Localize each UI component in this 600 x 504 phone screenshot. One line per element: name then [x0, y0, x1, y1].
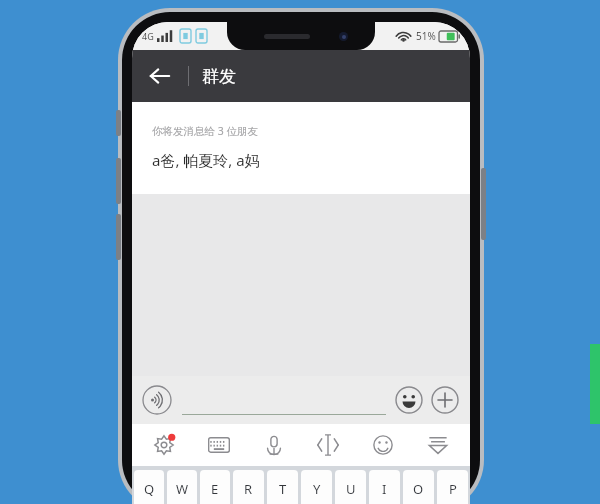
- staticText: 51%: [416, 29, 436, 43]
- staticText: Q: [144, 480, 155, 498]
- staticText: 4G: [142, 30, 154, 42]
- staticText: a爸, 帕夏玲, a妈: [152, 150, 260, 170]
- button[interactable]: Stickers: [360, 424, 406, 466]
- button[interactable]: Voice input: [142, 385, 172, 415]
- button[interactable]: E: [200, 470, 230, 504]
- button[interactable]: P: [437, 470, 468, 504]
- button[interactable]: U: [335, 470, 366, 504]
- button[interactable]: O: [403, 470, 434, 504]
- button[interactable]: [182, 385, 386, 415]
- button[interactable]: Back: [140, 56, 180, 96]
- button[interactable]: Hide keyboard: [415, 424, 461, 466]
- button[interactable]: Voice: [251, 424, 297, 466]
- staticText: 群发: [202, 66, 236, 87]
- button[interactable]: W: [167, 470, 197, 504]
- staticText: 你将发消息给 3 位朋友: [152, 124, 258, 138]
- staticText: W: [176, 480, 189, 498]
- button[interactable]: Emoji: [394, 385, 424, 415]
- button[interactable]: Keyboard layout: [196, 424, 242, 466]
- button[interactable]: Y: [301, 470, 332, 504]
- staticText: P: [449, 480, 457, 498]
- button[interactable]: I: [369, 470, 400, 504]
- button[interactable]: Q: [134, 470, 164, 504]
- staticText: I: [382, 480, 387, 498]
- staticText: T: [279, 480, 287, 498]
- staticText: Y: [313, 480, 321, 498]
- button[interactable]: Text cursor: [305, 424, 351, 466]
- staticText: R: [244, 480, 253, 498]
- staticText: O: [413, 480, 424, 498]
- staticText: U: [346, 480, 356, 498]
- button[interactable]: More: [430, 385, 460, 415]
- button[interactable]: Settings: [141, 424, 187, 466]
- button[interactable]: R: [233, 470, 264, 504]
- staticText: E: [211, 480, 219, 498]
- button[interactable]: T: [267, 470, 298, 504]
